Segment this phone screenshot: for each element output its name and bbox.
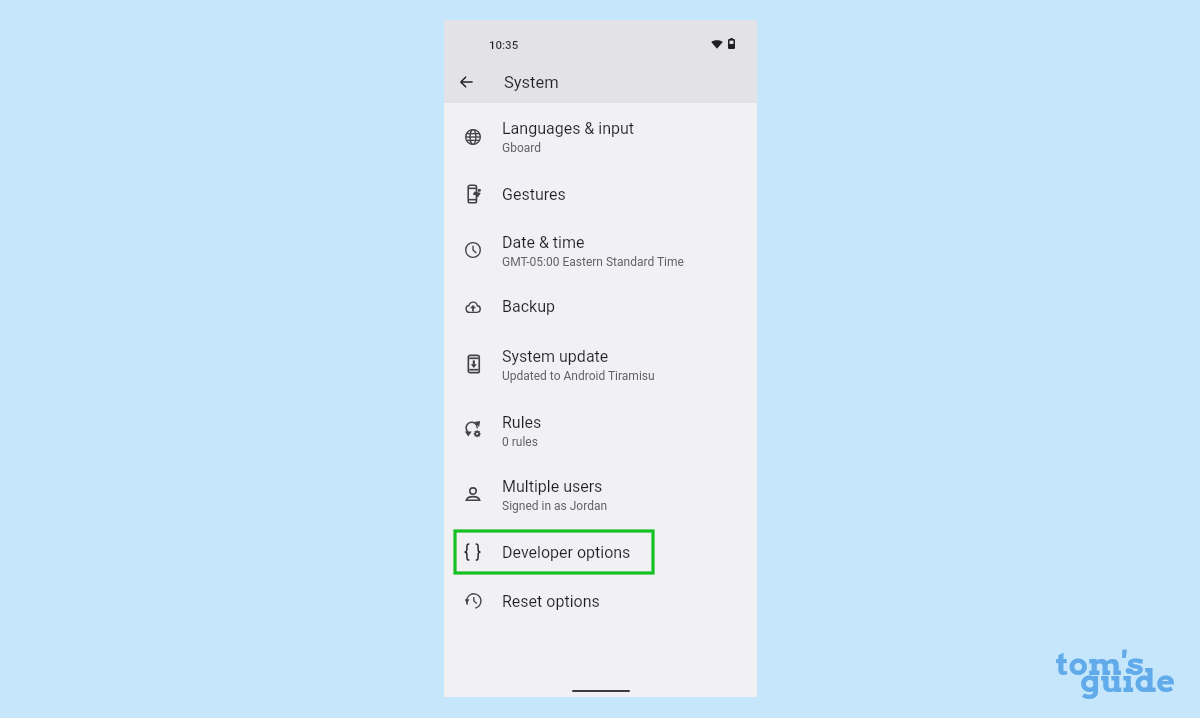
staticText: GMT-05:00 Eastern Standard Time	[502, 255, 684, 269]
button[interactable]: Back	[452, 68, 480, 96]
staticText: Gestures	[502, 185, 566, 204]
staticText: Reset options	[502, 592, 600, 611]
staticText: Signed in as Jordan	[502, 499, 608, 513]
button[interactable]: Multiple users	[444, 461, 757, 528]
button[interactable]: Languages & input	[444, 103, 757, 169]
staticText: guide	[1080, 661, 1176, 700]
button[interactable]: Rules	[444, 397, 757, 463]
staticText: Developer options	[502, 543, 631, 562]
staticText: 0 rules	[502, 435, 538, 449]
button[interactable]: Developer options	[444, 527, 757, 576]
staticText: System update	[502, 347, 609, 366]
button[interactable]: Reset options	[444, 576, 757, 625]
staticText: tom's	[1056, 644, 1145, 683]
button[interactable]: Backup	[444, 281, 757, 332]
staticText: System	[504, 73, 559, 92]
button[interactable]: System update	[444, 331, 757, 397]
staticText: Multiple users	[502, 477, 603, 496]
staticText: 10:35	[489, 38, 519, 51]
staticText: Updated to Android Tiramisu	[502, 369, 655, 383]
button[interactable]: Gestures	[444, 169, 757, 218]
staticText: Date & time	[502, 233, 585, 252]
staticText: Rules	[502, 413, 542, 432]
staticText: Gboard	[502, 141, 542, 155]
staticText: Backup	[502, 297, 555, 316]
button[interactable]: Date & time	[444, 217, 757, 281]
staticText: Languages & input	[502, 119, 635, 138]
